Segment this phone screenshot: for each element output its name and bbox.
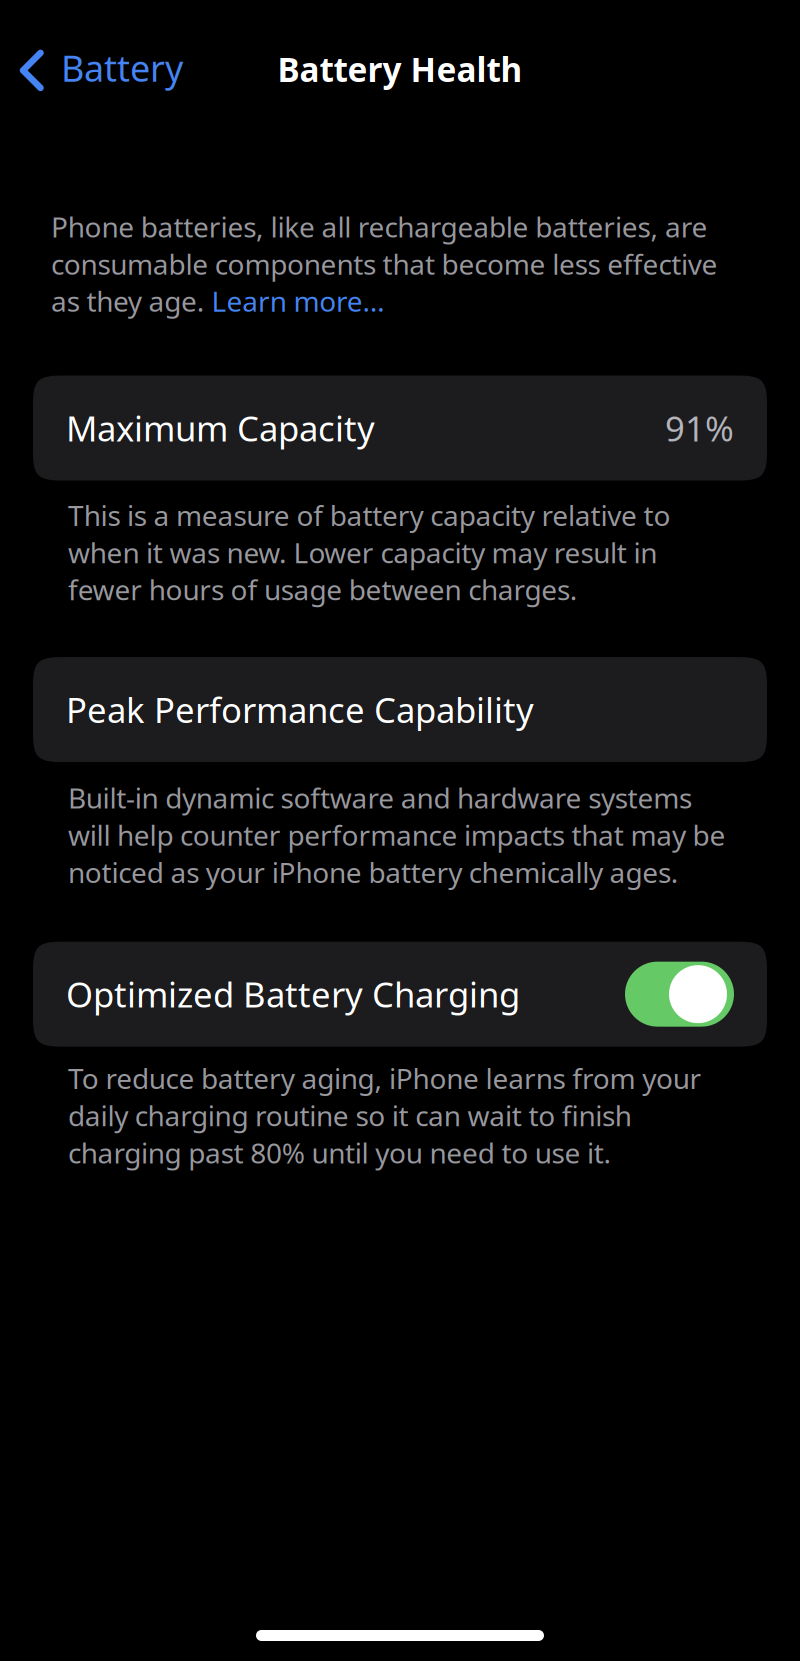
staticText: To reduce battery aging, iPhone learns f… [68,1060,702,1171]
staticText: as they age. [51,282,212,320]
button[interactable]: Back to Battery [0,0,199,103]
button[interactable]: Peak Performance Capability [0,657,800,762]
staticText: Battery Health [277,47,522,91]
staticText: Battery [61,44,183,92]
staticText: Phone batteries, like all rechargeable b… [51,208,718,282]
staticText: Peak Performance Capability [66,687,534,733]
staticText: Built-in dynamic software and hardware s… [68,779,725,891]
staticText: Optimized Battery Charging [66,971,520,1017]
staticText: Learn more… [212,282,385,320]
button[interactable]: Optimized Battery Charging, on [625,962,734,1027]
button[interactable]: Maximum Capacity [0,375,800,480]
staticText: 91% [665,405,734,451]
staticText: This is a measure of battery capacity re… [68,496,670,608]
staticText: Maximum Capacity [66,405,375,451]
button[interactable]: Optimized Battery Charging [0,942,800,1047]
button[interactable]: Learn more… [212,282,385,320]
